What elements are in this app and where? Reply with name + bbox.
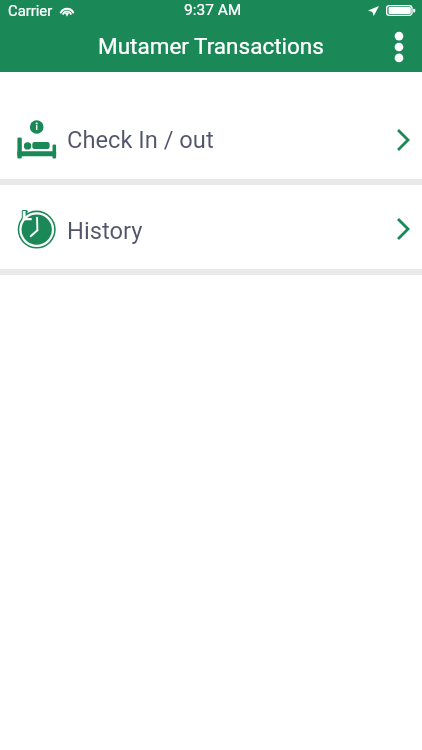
- staticText: History: [67, 217, 143, 245]
- staticText: 9:37 AM: [184, 1, 242, 19]
- staticText: Mutamer Transactions: [98, 33, 324, 59]
- button[interactable]: History: [0, 185, 422, 269]
- staticText: Carrier: [8, 2, 53, 19]
- button[interactable]: Check In / out: [0, 72, 422, 179]
- staticText: Check In / out: [67, 126, 214, 154]
- button[interactable]: More options: [376, 26, 422, 72]
